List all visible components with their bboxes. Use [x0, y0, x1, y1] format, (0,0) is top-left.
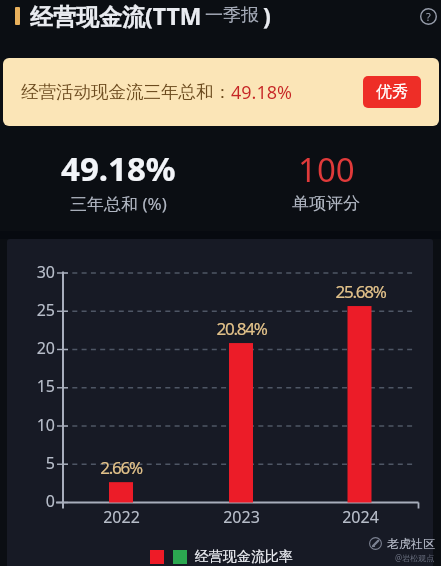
staticText: 三年总和 (%)	[70, 192, 167, 215]
button[interactable]: 100	[217, 134, 435, 226]
staticText: 10	[36, 414, 55, 436]
button[interactable]: Help	[418, 6, 438, 26]
staticText: )	[263, 0, 271, 31]
staticText: 25	[36, 299, 55, 321]
staticText: 49.18%	[61, 146, 176, 191]
staticText: 100	[298, 147, 355, 192]
staticText: 20.84%	[216, 317, 267, 340]
staticText: 2023	[223, 506, 260, 528]
staticText: 老虎社区	[387, 536, 435, 551]
staticText: 优秀	[376, 82, 408, 102]
staticText: 2.66%	[100, 456, 142, 479]
button[interactable]: 49.18%	[9, 134, 227, 226]
button[interactable]: 优秀	[363, 76, 421, 108]
staticText: 2022	[103, 506, 140, 528]
staticText: 0	[45, 490, 55, 512]
staticText: 2024	[342, 506, 379, 528]
staticText: 15	[36, 375, 55, 397]
staticText: 5	[45, 452, 55, 474]
staticText: 25.68%	[335, 280, 386, 303]
staticText: 49.18%	[231, 80, 292, 105]
staticText: 20	[36, 337, 55, 359]
staticText: ?	[426, 9, 431, 24]
staticText: 经营活动现金流三年总和：	[21, 81, 231, 103]
staticText: 一季报	[205, 4, 259, 27]
staticText: 30	[36, 261, 55, 283]
staticText: 经营现金流(TTM	[30, 0, 202, 31]
staticText: 经营现金流比率	[195, 548, 293, 566]
staticText: 单项评分	[292, 193, 360, 214]
staticText: @岩松观点	[395, 552, 435, 563]
